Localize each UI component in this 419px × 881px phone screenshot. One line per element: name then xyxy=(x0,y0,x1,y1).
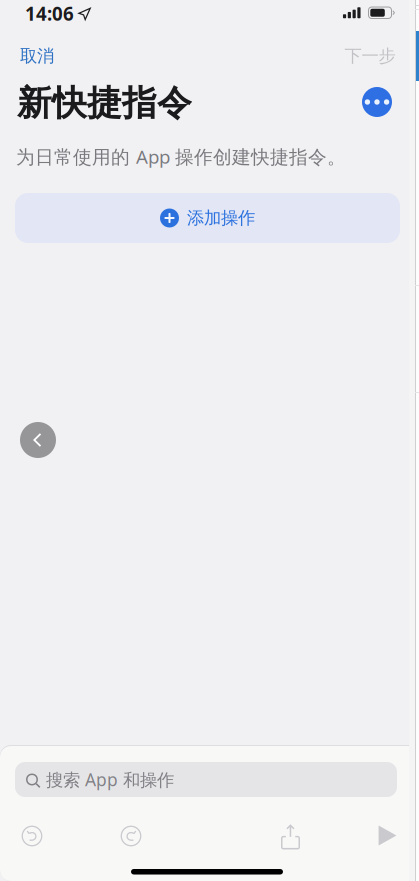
button[interactable]: 取消 xyxy=(14,42,60,70)
staticText: 下一步 xyxy=(344,45,395,67)
staticText: 搜索 App 和操作 xyxy=(46,768,174,791)
staticText: 为日常使用的 App 操作创建快捷指令。 xyxy=(16,144,346,169)
button[interactable]: 添加操作 xyxy=(15,193,400,243)
button[interactable]: 下一步 xyxy=(333,42,407,70)
staticText: 新快捷指令 xyxy=(17,82,192,125)
button[interactable]: 重做 xyxy=(119,824,143,848)
staticText: 添加操作 xyxy=(187,207,255,229)
staticText: 14:06 xyxy=(25,1,74,26)
button[interactable]: 更多选项 xyxy=(354,79,400,125)
staticText: 取消 xyxy=(20,45,54,67)
button[interactable]: 返回 xyxy=(20,422,56,458)
button[interactable]: 共享 xyxy=(279,820,302,847)
button[interactable]: 运行 xyxy=(377,824,398,847)
button[interactable]: 搜索 App 和操作 xyxy=(15,762,397,797)
button[interactable]: 撤销 xyxy=(20,824,44,848)
